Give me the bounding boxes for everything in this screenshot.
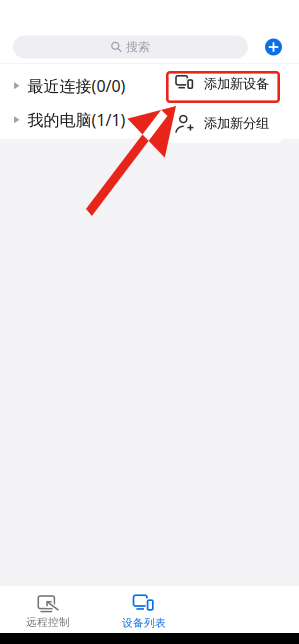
staticText: 我的电脑(1/1) (27, 109, 125, 130)
button[interactable]: 远程控制 (0, 590, 96, 629)
button[interactable]: 设备列表 (96, 589, 192, 630)
button[interactable]: 添加新分组 (164, 103, 284, 143)
button[interactable]: 添加新设备 (164, 64, 284, 103)
button[interactable]: 我的电脑(1/1) (0, 103, 299, 137)
staticText: 远程控制 (26, 616, 70, 629)
staticText: 添加新设备 (204, 76, 269, 92)
staticText: 添加新分组 (204, 115, 269, 131)
button[interactable]: 最近连接(0/0) (0, 69, 299, 103)
staticText: 设备列表 (122, 616, 166, 630)
staticText: 搜索 (126, 40, 150, 54)
button[interactable]: Add (265, 38, 282, 55)
button[interactable]: 搜索 (13, 35, 248, 58)
staticText: 最近连接(0/0) (27, 75, 125, 96)
